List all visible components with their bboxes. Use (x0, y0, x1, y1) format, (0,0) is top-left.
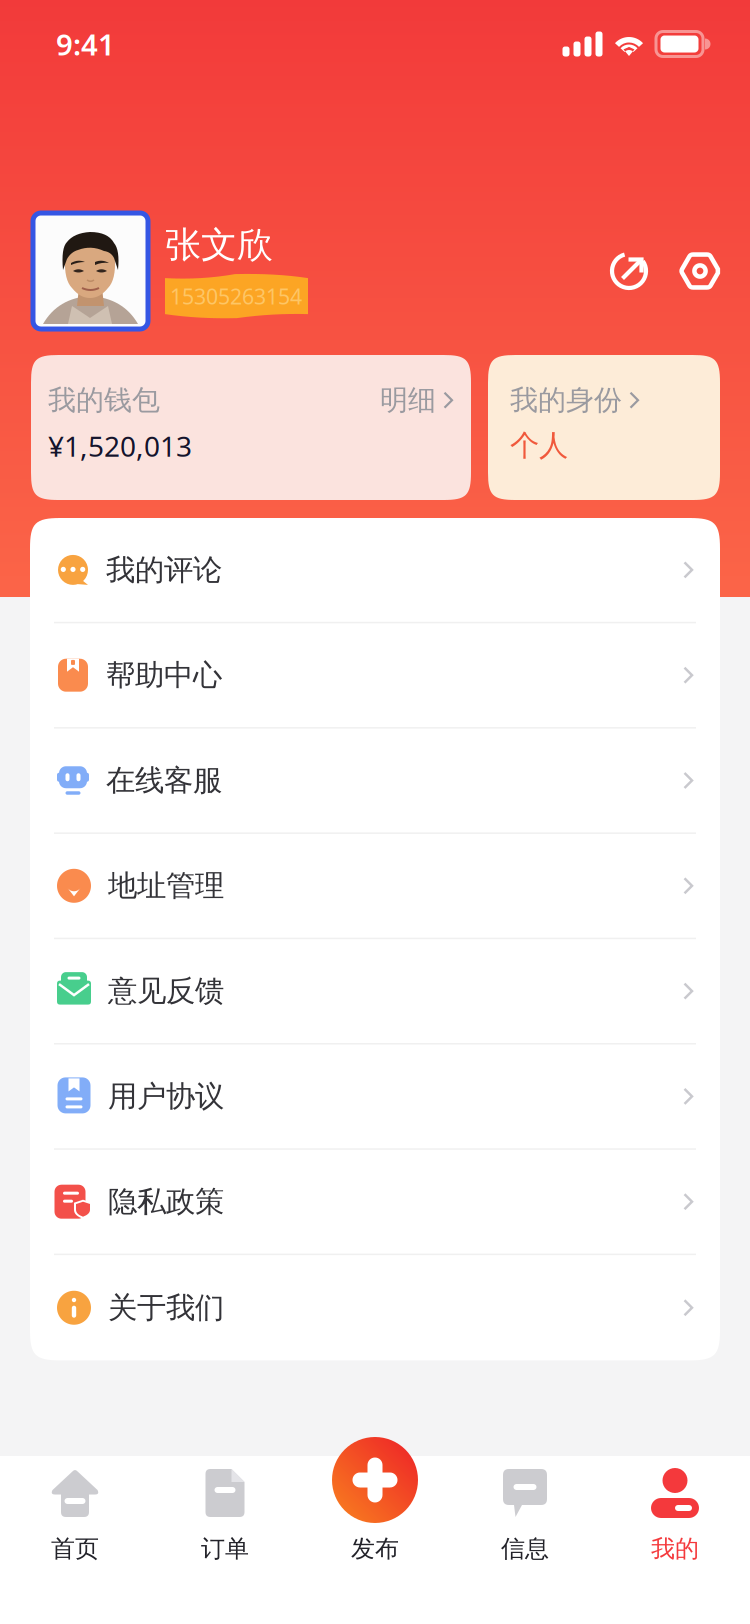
button[interactable]: 信息 (450, 1456, 600, 1624)
button[interactable]: 在线客服 (30, 729, 720, 832)
staticText: 用户协议 (108, 1078, 224, 1114)
staticText: 我的身份 (510, 383, 622, 417)
staticText: 9:41 (56, 24, 115, 63)
staticText: 关于我们 (108, 1290, 224, 1326)
staticText: 15305263154 (170, 282, 302, 310)
button[interactable]: 发布 (300, 1456, 450, 1624)
staticText: 意见反馈 (108, 973, 224, 1009)
button[interactable]: 用户协议 (30, 1044, 720, 1148)
staticText: 明细 (380, 383, 436, 417)
button[interactable]: 分享 (599, 240, 661, 302)
staticText: 在线客服 (106, 762, 222, 798)
button[interactable]: 隐私政策 (30, 1150, 720, 1254)
button[interactable]: 设置 (669, 240, 731, 302)
button[interactable]: 我的钱包 (31, 355, 471, 500)
button[interactable]: 发布 (332, 1437, 418, 1523)
button[interactable]: 首页 (0, 1456, 150, 1624)
button[interactable]: 订单 (150, 1456, 300, 1624)
button[interactable]: 我的 (600, 1456, 750, 1624)
button[interactable]: 地址管理 (30, 834, 720, 938)
staticText: 订单 (201, 1534, 249, 1563)
button[interactable]: 我的身份 (488, 355, 720, 500)
staticText: 帮助中心 (106, 657, 222, 693)
staticText: 我的钱包 (48, 383, 160, 417)
staticText: 发布 (351, 1534, 399, 1563)
button[interactable]: 我的评论 (30, 518, 720, 622)
staticText: 地址管理 (108, 868, 224, 904)
staticText: 信息 (501, 1534, 549, 1563)
staticText: 首页 (51, 1534, 99, 1563)
staticText: ¥1,520,013 (48, 427, 192, 465)
button[interactable]: 关于我们 (30, 1255, 720, 1360)
button[interactable]: 帮助中心 (30, 623, 720, 727)
staticText: 张文欣 (165, 223, 273, 267)
button[interactable]: 意见反馈 (30, 939, 720, 1043)
staticText: 我的评论 (106, 552, 222, 588)
staticText: 我的 (651, 1534, 699, 1563)
staticText: 个人 (510, 427, 568, 463)
staticText: 隐私政策 (108, 1184, 224, 1220)
